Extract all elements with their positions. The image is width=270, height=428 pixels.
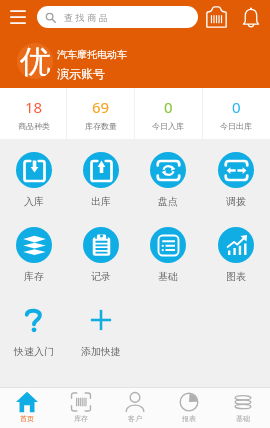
staticText: 入库 (24, 195, 44, 208)
staticText: 69 (92, 97, 110, 117)
button[interactable]: 客户 (108, 388, 162, 428)
button[interactable]: 基础 (216, 388, 270, 428)
button[interactable]: 记录 (67, 227, 134, 283)
staticText: 记录 (91, 270, 111, 283)
button[interactable]: 0 (134, 88, 202, 139)
staticText: 库存 (74, 414, 88, 423)
staticText: 库存 (24, 270, 44, 283)
button[interactable]: 18 (0, 88, 67, 139)
staticText: 库存数量 (85, 121, 117, 131)
staticText: 盘点 (158, 195, 178, 208)
staticText: 报表 (182, 414, 196, 423)
staticText: 图表 (226, 270, 246, 283)
staticText: 调拨 (226, 195, 246, 208)
staticText: 今日入库 (152, 121, 184, 131)
staticText: 演示账号 (57, 66, 105, 81)
button[interactable]: Scan barcode (202, 3, 230, 31)
button[interactable]: 0 (202, 88, 270, 139)
staticText: 查找商品 (64, 12, 111, 23)
staticText: 客户 (128, 414, 142, 423)
button[interactable]: 库存 (0, 227, 67, 283)
button[interactable]: 图表 (202, 227, 270, 283)
staticText: 18 (25, 97, 43, 117)
button[interactable]: 首页 (0, 388, 54, 428)
button[interactable]: 盘点 (134, 152, 202, 208)
staticText: 0 (164, 97, 173, 117)
button[interactable]: 报表 (162, 388, 216, 428)
staticText: 0 (232, 97, 241, 117)
button[interactable]: 库存 (54, 388, 108, 428)
button[interactable]: 出库 (67, 152, 134, 208)
button[interactable]: 基础 (134, 227, 202, 283)
button[interactable]: 添加快捷 (67, 302, 134, 358)
staticText: 基础 (158, 270, 178, 283)
staticText: 首页 (20, 414, 34, 423)
staticText: 商品种类 (18, 121, 50, 131)
button[interactable]: Notifications (237, 3, 265, 31)
staticText: 添加快捷 (81, 345, 121, 358)
button[interactable]: 69 (67, 88, 134, 139)
staticText: 优 (20, 43, 51, 78)
button[interactable]: 入库 (0, 152, 67, 208)
staticText: 出库 (91, 195, 111, 208)
button[interactable]: 查找商品 (37, 6, 198, 28)
staticText: 基础 (236, 414, 250, 423)
staticText: 快速入门 (14, 345, 54, 358)
staticText: 今日出库 (220, 121, 252, 131)
button[interactable]: Menu (9, 4, 27, 30)
button[interactable]: 调拨 (202, 152, 270, 208)
staticText: 汽车摩托电动车 (57, 48, 127, 61)
button[interactable]: 快速入门 (0, 302, 67, 358)
